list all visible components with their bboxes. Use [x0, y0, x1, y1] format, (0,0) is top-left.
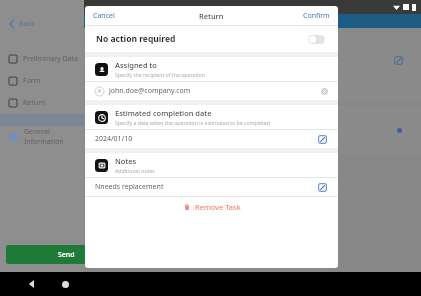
button[interactable]: 2024/01/10 [85, 130, 338, 148]
staticText: Return [199, 11, 224, 21]
staticText: Additional notes [115, 167, 155, 174]
staticText: Preliminary Data [23, 54, 78, 64]
staticText: No action required [96, 33, 176, 45]
staticText: Estimated completion date [115, 108, 212, 118]
button[interactable]: Return [0, 92, 84, 114]
button[interactable]: No action required [85, 26, 338, 52]
staticText: Specify the recipient of the operation [115, 71, 205, 78]
staticText: Back [19, 19, 35, 29]
button[interactable]: Assigned to [85, 57, 338, 81]
button[interactable]: Confirm [295, 7, 338, 25]
button[interactable]: Form [0, 70, 84, 92]
staticText: Send [58, 250, 75, 260]
button[interactable]: Remove Task [85, 197, 338, 217]
button[interactable]: Edit date [318, 135, 327, 144]
button[interactable]: Send [6, 245, 126, 264]
other: Home [62, 281, 69, 288]
staticText: Assigned to [115, 60, 157, 70]
other: Back [28, 280, 36, 288]
staticText: General Information [24, 127, 84, 147]
staticText: 2024/01/10 [95, 134, 133, 144]
button[interactable]: Back [0, 14, 84, 34]
button[interactable]: john.doe@company.com [85, 82, 338, 100]
staticText: Nneeds replacement [95, 182, 164, 192]
staticText: Specify a date when the operation is est… [115, 119, 270, 126]
button[interactable]: Clear [321, 88, 328, 95]
staticText: Form [23, 76, 41, 86]
staticText: john.doe@company.com [109, 86, 191, 96]
staticText: Return [23, 98, 46, 108]
button[interactable]: Nneeds replacement [85, 178, 338, 196]
button[interactable]: Edit notes [318, 183, 327, 192]
staticText: Remove Task [195, 202, 241, 212]
staticText: Confirm [303, 11, 330, 21]
button[interactable]: Estimated completion date [85, 105, 338, 129]
button[interactable]: Preliminary Data [0, 48, 84, 70]
staticText: Cancel [93, 11, 115, 21]
button[interactable]: Notes [85, 153, 338, 177]
button[interactable]: General Information [0, 126, 84, 148]
button[interactable]: Cancel [85, 7, 123, 25]
staticText: Notes [115, 156, 137, 166]
